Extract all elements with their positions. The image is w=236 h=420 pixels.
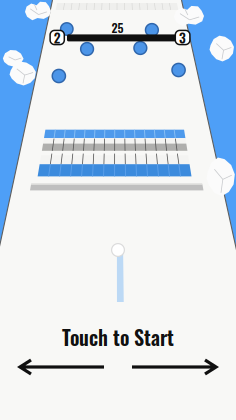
button[interactable]: 2 (50, 30, 64, 45)
staticText: 3 (179, 28, 186, 47)
button[interactable]: Touch to Start (0, 306, 236, 368)
button[interactable]: 3 (175, 30, 190, 45)
staticText: 25 (111, 19, 123, 36)
staticText: 2 (54, 28, 61, 47)
staticText: Touch to Start (62, 322, 174, 352)
